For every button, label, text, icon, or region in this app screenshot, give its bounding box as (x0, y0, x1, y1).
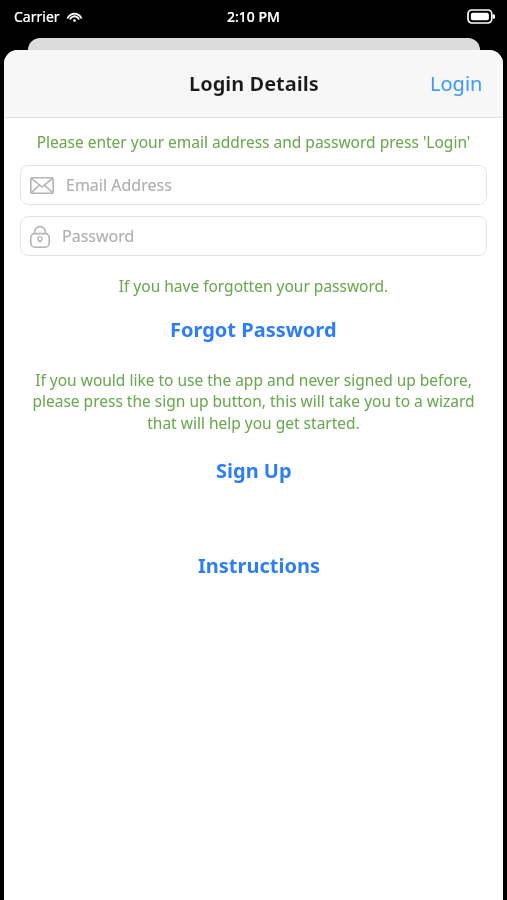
staticText: Please enter your email address and pass… (34, 131, 473, 152)
staticText: If you would like to use the app and nev… (32, 369, 475, 434)
button[interactable]: Forgot Password (154, 312, 353, 347)
staticText: Sign Up (216, 457, 292, 484)
staticText: Instructions (198, 552, 320, 579)
button[interactable]: Password (20, 216, 487, 256)
staticText: If you have forgotten your password. (20, 275, 487, 296)
staticText: Carrier (14, 7, 60, 26)
button[interactable]: Login (410, 58, 503, 109)
button[interactable]: Instructions (182, 548, 336, 583)
staticText: Forgot Password (170, 316, 337, 343)
button[interactable]: Email Address (20, 165, 487, 205)
staticText: Password (62, 225, 135, 247)
staticText: Email Address (66, 174, 172, 196)
staticText: Login Details (189, 70, 319, 97)
staticText: 2:10 PM (227, 7, 280, 26)
button[interactable]: Sign Up (200, 453, 308, 488)
staticText: Login (430, 70, 483, 97)
